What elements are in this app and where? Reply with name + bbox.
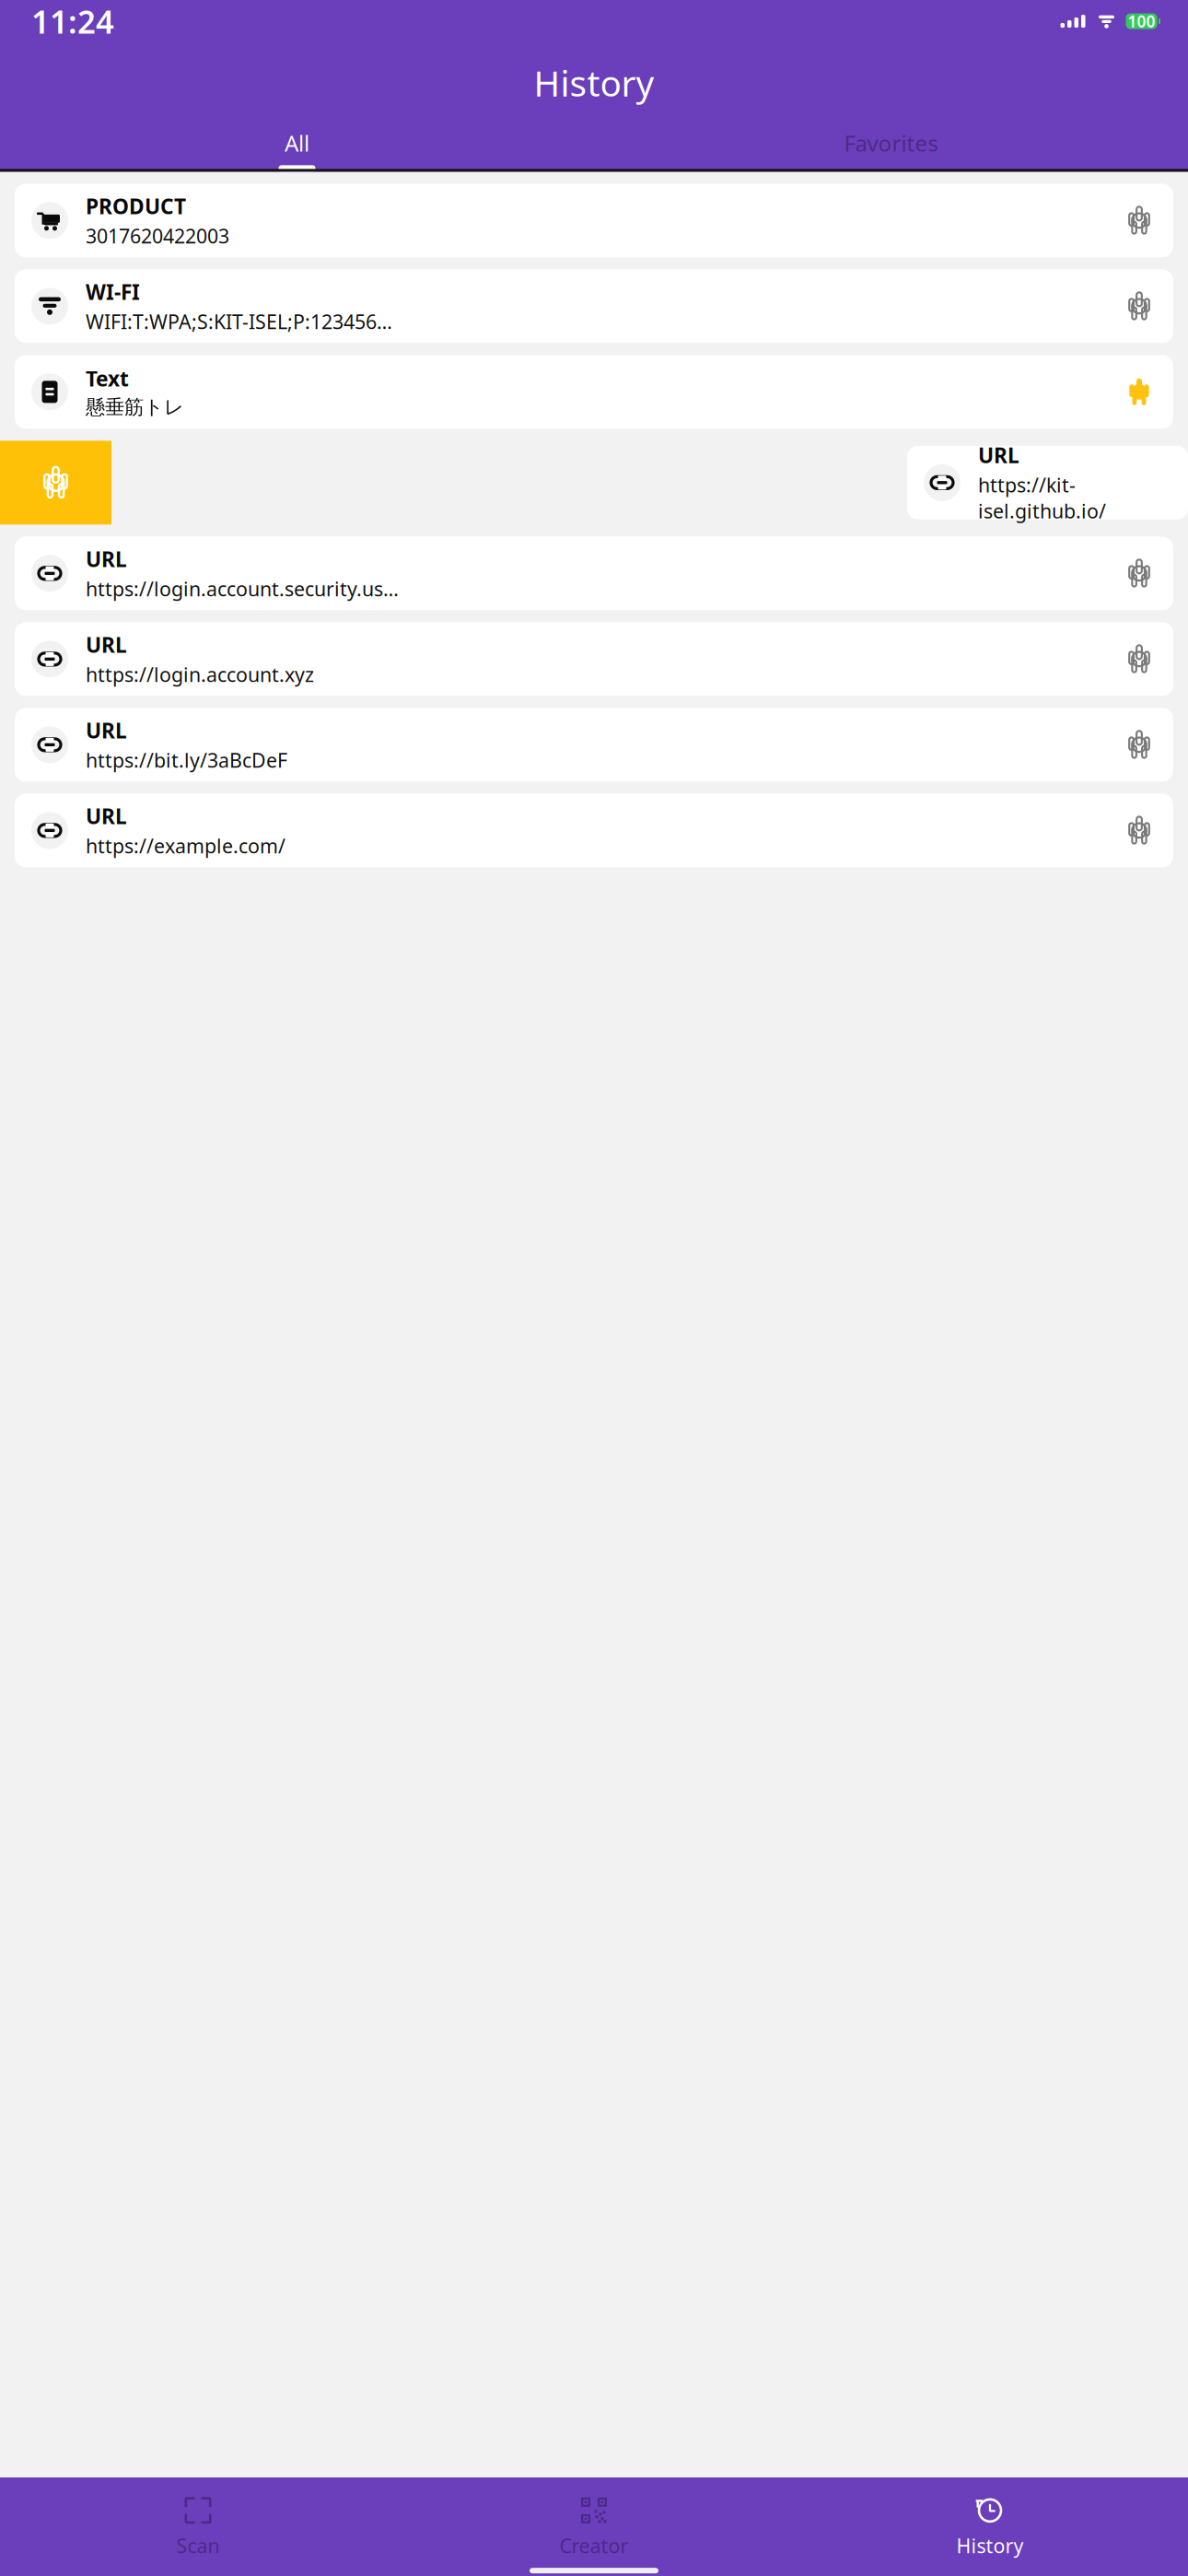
staticText: https://login.account.security.us… [86, 576, 399, 602]
button[interactable]: URL [15, 622, 1173, 696]
staticText: Scan [176, 2533, 220, 2559]
button[interactable]: History [792, 2487, 1188, 2568]
button[interactable]: Favorite [0, 441, 111, 525]
staticText: URL [86, 545, 127, 573]
staticText: URL [978, 441, 1019, 469]
staticText: History [956, 2533, 1024, 2559]
button[interactable]: URL [907, 446, 1188, 519]
button[interactable]: Creator [396, 2487, 792, 2568]
staticText: URL [86, 631, 127, 658]
button[interactable]: PRODUCT [15, 184, 1173, 257]
button[interactable]: URL [15, 708, 1173, 782]
staticText: https://bit.ly/3aBcDeF [86, 747, 287, 773]
button[interactable]: Scan [0, 2487, 396, 2568]
staticText: Creator [559, 2533, 629, 2559]
button[interactable]: URL [15, 536, 1173, 610]
staticText: PRODUCT [86, 192, 186, 220]
staticText: WI-FI [86, 278, 140, 306]
button[interactable]: WI-FI [15, 269, 1173, 343]
staticText: 100 [1128, 11, 1155, 32]
staticText: 11:24 [31, 0, 114, 42]
button[interactable]: All [0, 115, 594, 172]
staticText: 3017620422003 [86, 223, 229, 249]
button[interactable]: Favorites [594, 115, 1188, 172]
staticText: All [285, 128, 309, 158]
staticText: https://kit-isel.github.io/ [978, 472, 1106, 524]
staticText: URL [86, 716, 127, 744]
staticText: https://example.com/ [86, 833, 285, 859]
staticText: History [534, 59, 654, 106]
staticText: Text [86, 365, 129, 392]
staticText: URL [86, 802, 127, 830]
staticText: Favorites [844, 128, 938, 158]
staticText: 懸垂筋トレ [86, 395, 184, 419]
staticText: WIFI:T:WPA;S:KIT-ISEL;P:123456… [86, 308, 392, 334]
button[interactable]: Text [15, 355, 1173, 429]
button[interactable]: URL [15, 794, 1173, 867]
staticText: https://login.account.xyz [86, 661, 314, 687]
